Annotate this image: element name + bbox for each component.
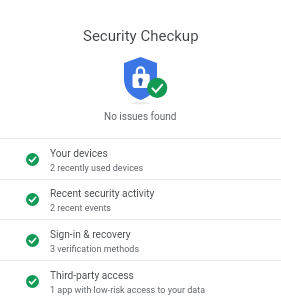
button[interactable]: Sign-in & recovery: [0, 219, 281, 260]
staticText: 3 verification methods: [50, 244, 140, 255]
staticText: 1 app with low-risk access to your data: [50, 285, 206, 296]
button[interactable]: Recent security activity: [0, 179, 281, 219]
staticText: Sign-in & recovery: [50, 229, 131, 241]
button[interactable]: Your devices: [0, 138, 281, 179]
staticText: Recent security activity: [50, 188, 155, 200]
staticText: Your devices: [50, 148, 108, 160]
staticText: Security Checkup: [83, 27, 199, 45]
staticText: No issues found: [104, 111, 177, 123]
staticText: Third-party access: [50, 270, 134, 282]
other: Security status: no issues found: [114, 57, 167, 100]
button[interactable]: Third-party access: [0, 260, 281, 300]
staticText: 2 recent events: [50, 203, 112, 214]
staticText: 2 recently used devices: [50, 163, 144, 174]
